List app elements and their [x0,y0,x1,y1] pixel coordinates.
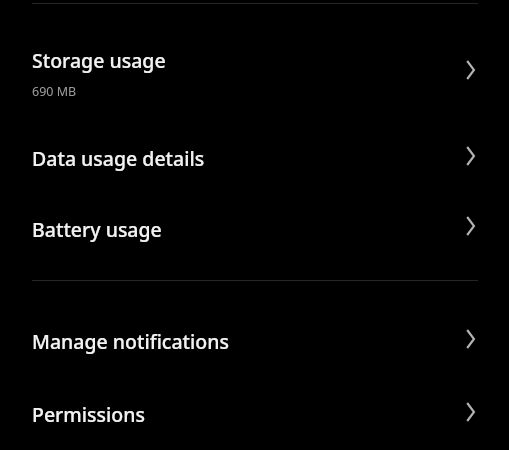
button[interactable]: Battery usage [0,192,509,262]
button[interactable]: Permissions [0,376,509,450]
staticText: Data usage details [32,145,205,172]
staticText: Battery usage [32,216,162,243]
staticText: Permissions [32,401,145,428]
staticText: 690 MB [32,83,77,100]
button[interactable]: Data usage details [0,120,509,192]
button[interactable]: Manage notifications [0,281,509,376]
staticText: Manage notifications [32,328,229,355]
staticText: Storage usage [32,47,166,74]
button[interactable]: Storage usage [0,4,509,120]
